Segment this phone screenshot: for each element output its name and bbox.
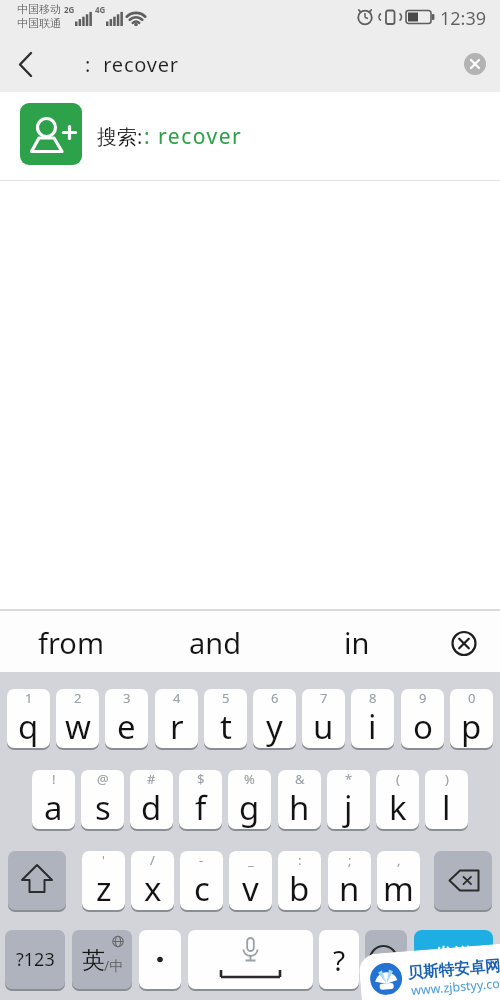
staticText: 贝斯特安卓网 [407,956,500,983]
staticText: ' [102,851,105,869]
button[interactable]: from [16,613,126,671]
button[interactable]: ?123 [5,930,65,989]
staticText: w [65,704,91,748]
button[interactable]: 英 [72,930,132,989]
staticText: and [189,623,242,662]
staticText: q [18,704,39,748]
staticText: : [298,851,302,869]
staticText: t [220,704,232,748]
staticText: x [144,866,162,910]
staticText: m [383,866,414,910]
button[interactable]: * [327,770,370,829]
button[interactable]: 4 [155,689,198,748]
button[interactable]: 发送 [414,930,493,989]
staticText: www.zjbstyy.com [410,974,500,999]
staticText: /中 [104,956,124,975]
button[interactable] [442,621,486,665]
button[interactable] [188,930,313,989]
staticText: 6 [271,689,279,707]
staticText: f [195,785,207,829]
staticText: in [344,623,370,662]
staticText: 2 [74,689,82,707]
button[interactable]: 8 [351,689,394,748]
button[interactable]: in [302,613,412,671]
button[interactable]: 6 [253,689,296,748]
staticText: h [289,785,310,829]
button[interactable]: @ [81,770,124,829]
staticText: 12:39 [440,6,487,31]
staticText: s [95,785,111,829]
staticText: e [117,704,136,748]
staticText: $ [197,770,205,788]
button[interactable] [464,53,486,75]
button[interactable]: ? [319,930,359,989]
staticText: 中国移动 [17,2,61,16]
staticText: k [389,785,407,829]
staticText: b [289,866,310,910]
staticText: 5 [222,689,230,707]
staticText: l [442,785,451,829]
staticText: from [38,623,105,662]
button[interactable]: # [130,770,173,829]
button[interactable]: ; [328,851,371,910]
staticText: ?123 [16,947,55,972]
staticText: o [413,704,433,748]
button[interactable] [8,851,66,910]
button[interactable]: - [180,851,223,910]
staticText: ( [396,770,400,788]
staticText: z [96,866,112,910]
staticText: , [397,851,401,869]
button[interactable]: 1 [7,689,50,748]
staticText: ! [52,770,56,788]
button[interactable] [434,851,492,910]
button[interactable]: ! [32,770,75,829]
staticText: c [194,866,210,910]
staticText: : recover [85,51,179,78]
button[interactable] [0,36,64,92]
staticText: # [147,770,156,788]
button[interactable]: $ [179,770,222,829]
button[interactable]: ( [376,770,419,829]
staticText: 1 [25,689,33,707]
button[interactable]: 5 [204,689,247,748]
staticText: & [295,770,305,788]
staticText: 2G [64,4,75,15]
staticText: v [242,866,259,910]
button[interactable]: 搜索: [0,92,500,180]
button[interactable]: 7 [302,689,345,748]
button[interactable]: 9 [401,689,444,748]
staticText: ) [445,770,449,788]
staticText: 4 [173,689,181,707]
staticText: j [344,785,353,829]
staticText: ? [333,941,346,979]
staticText: 3 [123,689,131,707]
button[interactable]: % [228,770,271,829]
button[interactable]: & [278,770,321,829]
staticText: 0 [468,689,476,707]
staticText: u [313,704,334,748]
button[interactable]: 2 [56,689,99,748]
staticText: 英 [82,946,105,975]
staticText: 中国联通 [17,16,61,30]
staticText: : recover [144,122,243,151]
staticText: @ [97,770,109,788]
staticText: 7 [320,689,328,707]
staticText: n [339,866,360,910]
staticText: r [170,704,184,748]
staticText: ; [348,851,352,869]
button[interactable] [365,930,407,989]
button[interactable]: ) [425,770,468,829]
button[interactable]: _ [229,851,272,910]
button[interactable]: and [160,613,270,671]
staticText: - [199,851,204,869]
staticText: * [345,770,353,788]
button[interactable]: 0 [450,689,493,748]
button[interactable]: / [131,851,174,910]
button[interactable]: , [377,851,420,910]
button[interactable]: ' [82,851,125,910]
staticText: / [150,851,155,869]
staticText: a [44,785,63,829]
button[interactable] [139,930,181,989]
button[interactable]: 3 [105,689,148,748]
button[interactable]: : [278,851,321,910]
